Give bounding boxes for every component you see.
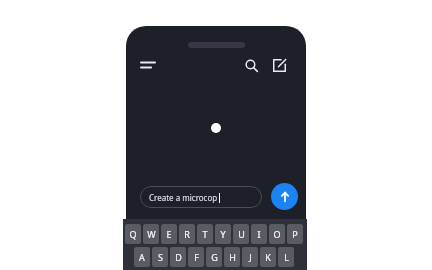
button[interactable]: Search [240,54,262,76]
button[interactable]: W [143,224,159,244]
staticText: L [284,251,289,263]
button[interactable]: Create a microcop [140,186,262,208]
button[interactable]: O [269,224,285,244]
button[interactable]: Compose [268,54,290,76]
button[interactable]: S [152,247,168,267]
button[interactable]: L [278,247,294,267]
staticText: P [292,228,298,240]
staticText: H [229,251,236,263]
staticText: G [211,251,218,263]
staticText: S [158,251,163,263]
button[interactable]: A [134,247,150,267]
button[interactable]: G [206,247,222,267]
staticText: Create a microcop [149,192,218,203]
staticText: A [139,251,145,263]
button[interactable]: U [233,224,249,244]
staticText: I [257,228,261,240]
staticText: J [249,251,252,263]
staticText: Y [220,228,226,240]
staticText: K [265,251,271,263]
staticText: T [202,228,208,240]
staticText: F [194,251,199,263]
staticText: Q [129,228,137,240]
staticText: D [175,251,182,263]
staticText: O [273,228,281,240]
button[interactable]: Y [215,224,231,244]
button[interactable]: I [251,224,267,244]
button[interactable]: Q [125,224,141,244]
button[interactable]: P [287,224,303,244]
button[interactable]: K [260,247,276,267]
staticText: W [147,228,156,240]
staticText: R [184,228,190,240]
button[interactable]: J [242,247,258,267]
button[interactable]: F [188,247,204,267]
staticText: E [166,228,172,240]
button[interactable]: T [197,224,213,244]
staticText: U [238,228,245,240]
button[interactable]: H [224,247,240,267]
button[interactable]: D [170,247,186,267]
button[interactable]: Send [271,183,298,210]
button[interactable]: Menu [136,54,160,76]
button[interactable]: E [161,224,177,244]
button[interactable]: R [179,224,195,244]
